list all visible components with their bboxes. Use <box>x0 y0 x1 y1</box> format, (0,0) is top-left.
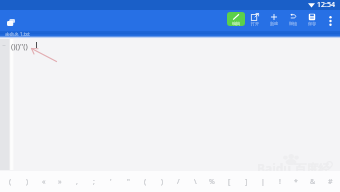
staticText: " <box>127 177 130 187</box>
staticText: 保存 <box>308 21 316 26</box>
staticText: 新建 <box>270 21 278 26</box>
staticText: 撤销 <box>289 21 297 26</box>
staticText: ' <box>110 177 112 187</box>
staticText: | <box>261 177 265 187</box>
staticText: & <box>310 177 316 187</box>
staticText: 编辑 <box>232 21 240 26</box>
button[interactable]: » <box>53 171 67 192</box>
button[interactable]: # <box>323 171 337 192</box>
staticText: \ <box>194 177 197 187</box>
button[interactable]: ) <box>20 171 34 192</box>
staticText: ( <box>144 177 147 187</box>
button[interactable]: 新建 <box>264 10 283 31</box>
staticText: 12:54 <box>317 0 335 10</box>
button[interactable]: % <box>205 171 219 192</box>
button[interactable]: ] <box>239 171 253 192</box>
staticText: , <box>76 177 78 187</box>
staticText: ; <box>93 177 95 187</box>
staticText: 未命名 1.txt <box>5 31 30 36</box>
button[interactable]: & <box>306 171 320 192</box>
button[interactable]: More options <box>321 10 340 31</box>
staticText: Baidu 百度经验 <box>257 160 333 180</box>
staticText: jingyan.baidu.com <box>260 169 304 176</box>
staticText: ] <box>245 177 248 187</box>
staticText: » <box>58 177 62 187</box>
staticText: # <box>328 177 333 187</box>
button[interactable]: « <box>37 171 51 192</box>
button[interactable]: 打开 <box>245 10 264 31</box>
staticText: [ <box>228 177 231 187</box>
button[interactable]: 撤销 <box>283 10 302 31</box>
button[interactable]: ; <box>87 171 101 192</box>
staticText: ) <box>161 177 164 187</box>
staticText: ()()''() <box>11 41 28 51</box>
button[interactable]: , <box>70 171 84 192</box>
staticText: * <box>294 177 298 187</box>
button[interactable]: * <box>289 171 303 192</box>
button[interactable]: ( <box>3 171 17 192</box>
staticText: ( <box>9 177 12 187</box>
button[interactable]: | <box>256 171 270 192</box>
button[interactable]: File browser <box>3 14 19 30</box>
staticText: 打开 <box>251 21 259 26</box>
button[interactable]: [ <box>222 171 236 192</box>
button[interactable]: 保存 <box>302 10 321 31</box>
button[interactable]: ! <box>273 171 287 192</box>
button[interactable]: ( <box>138 171 152 192</box>
button[interactable]: " <box>121 171 135 192</box>
button[interactable]: 编辑 <box>226 10 245 31</box>
staticText: ) <box>26 177 29 187</box>
staticText: « <box>42 177 46 187</box>
staticText: % <box>209 177 215 187</box>
staticText: ! <box>279 177 281 187</box>
button[interactable]: \ <box>188 171 202 192</box>
button[interactable]: / <box>171 171 185 192</box>
button[interactable]: ) <box>155 171 169 192</box>
staticText: / <box>177 177 180 187</box>
